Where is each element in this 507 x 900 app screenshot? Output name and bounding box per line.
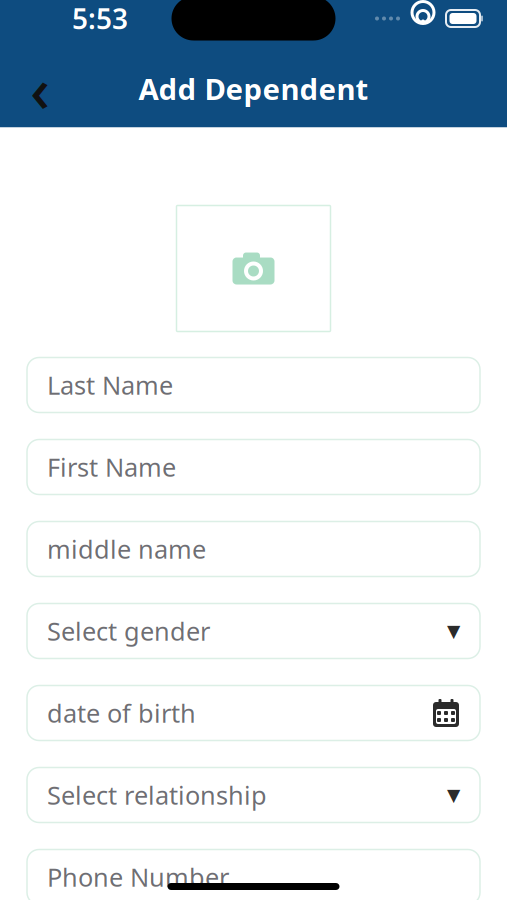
staticText: Last Name [47,368,173,402]
staticText: ▼ [447,621,460,641]
staticText: date of birth [47,696,196,730]
staticText: 5:53 [72,0,128,37]
button[interactable]: Add photo [176,205,330,331]
staticText: middle name [47,532,206,566]
staticText: Select relationship [47,778,267,812]
button[interactable]: Back [12,62,68,114]
staticText: First Name [47,450,176,484]
button[interactable]: middle name [27,521,480,576]
staticText: Phone Number [47,860,229,894]
staticText: Add Dependent [138,69,368,108]
button[interactable]: First Name [27,439,480,494]
staticText: ▼ [447,785,460,805]
staticText: ‹ [30,48,50,129]
button[interactable]: Phone Number [27,849,480,900]
button[interactable]: Select gender [27,603,480,658]
button[interactable]: date of birth [27,685,480,740]
button[interactable]: Select relationship [27,767,480,822]
button[interactable]: Last Name [27,357,480,412]
staticText: Select gender [47,614,210,648]
